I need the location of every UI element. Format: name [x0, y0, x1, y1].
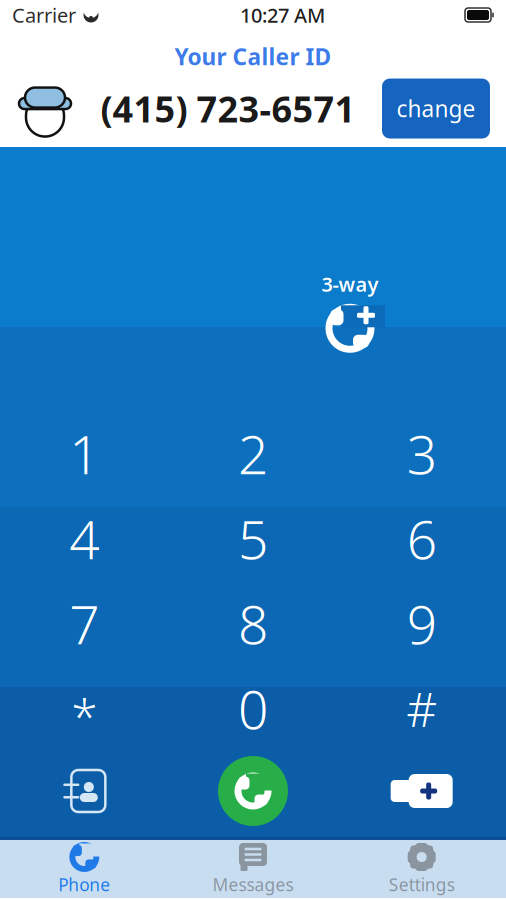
button[interactable]: #: [337, 666, 506, 751]
button[interactable]: Contacts: [0, 751, 169, 831]
staticText: 0: [238, 673, 268, 744]
staticText: 7: [69, 588, 99, 659]
staticText: 4: [69, 503, 99, 574]
staticText: Carrier: [12, 2, 76, 28]
button[interactable]: 4: [0, 496, 169, 581]
staticText: 10:27 AM: [240, 2, 325, 28]
staticText: 8: [238, 588, 268, 659]
staticText: Phone: [58, 873, 110, 896]
button[interactable]: Settings: [337, 841, 506, 896]
staticText: change: [396, 93, 475, 124]
button[interactable]: Start 3-way call: [302, 271, 398, 359]
staticText: Your Caller ID: [174, 41, 331, 71]
button[interactable]: 8: [169, 581, 337, 666]
button[interactable]: change: [382, 79, 490, 139]
staticText: (415) 723-6571: [100, 85, 355, 132]
button[interactable]: 3: [337, 411, 506, 496]
button[interactable]: Call: [169, 751, 337, 831]
button[interactable]: 2: [169, 411, 337, 496]
staticText: 3-way: [321, 271, 378, 297]
button[interactable]: Delete: [337, 751, 506, 831]
button[interactable]: Phone: [0, 841, 169, 896]
button[interactable]: 9: [337, 581, 506, 666]
button[interactable]: 0: [169, 666, 337, 751]
button[interactable]: 1: [0, 411, 169, 496]
staticText: Messages: [212, 873, 293, 896]
button[interactable]: 7: [0, 581, 169, 666]
staticText: 1: [69, 418, 99, 489]
staticText: 9: [407, 588, 437, 659]
staticText: 6: [407, 503, 437, 574]
staticText: Settings: [389, 873, 455, 896]
staticText: *: [71, 684, 97, 747]
staticText: 5: [238, 503, 268, 574]
button[interactable]: Messages: [169, 841, 337, 896]
button[interactable]: 6: [337, 496, 506, 581]
button[interactable]: *: [0, 666, 169, 751]
staticText: #: [406, 677, 437, 740]
button[interactable]: 5: [169, 496, 337, 581]
staticText: 3: [407, 418, 437, 489]
staticText: 2: [238, 418, 268, 489]
